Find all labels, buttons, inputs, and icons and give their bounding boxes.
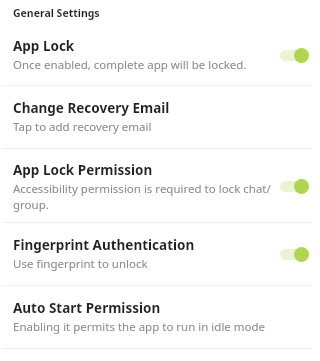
staticText: Use fingerprint to unlock	[13, 256, 148, 272]
staticText: Tap to add recovery email	[13, 119, 152, 135]
button[interactable]: App Lock Permission	[0, 149, 320, 222]
staticText: Accessibility permission is required to …	[13, 181, 274, 212]
staticText: Enabling it permits the app to run in id…	[13, 319, 266, 335]
staticText: General Settings	[13, 6, 100, 20]
staticText: Auto Start Permission	[13, 299, 161, 317]
button[interactable]: Toggle Fingerprint Authentication	[278, 243, 311, 266]
button[interactable]: Change Recovery Email	[0, 86, 320, 148]
staticText: App Lock	[13, 37, 75, 55]
button[interactable]: Toggle App Lock	[278, 44, 311, 67]
staticText: App Lock Permission	[13, 161, 153, 179]
button[interactable]: Fingerprint Authentication	[0, 223, 320, 285]
button[interactable]: App Lock	[0, 37, 320, 85]
staticText: Once enabled, complete app will be locke…	[13, 57, 247, 73]
button[interactable]: Auto Start Permission	[0, 286, 320, 348]
staticText: Change Recovery Email	[13, 99, 170, 117]
staticText: Fingerprint Authentication	[13, 236, 195, 254]
button[interactable]: Toggle App Lock Permission	[278, 175, 311, 198]
